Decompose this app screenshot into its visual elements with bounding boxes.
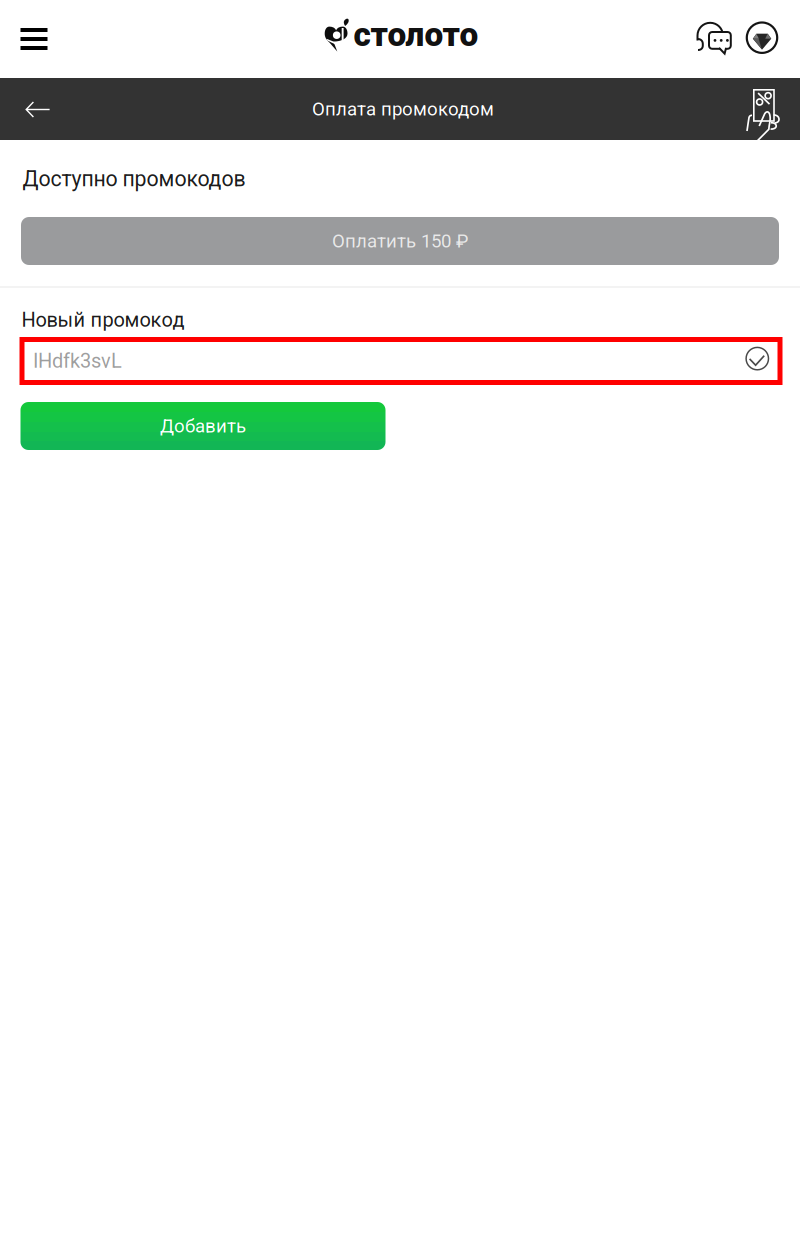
staticText: Новый промокод [21, 308, 184, 332]
button[interactable]: Поддержка [696, 21, 744, 77]
staticText: Оплатить 150 ₽ [332, 230, 468, 252]
button[interactable]: Промокоды [736, 78, 798, 140]
button[interactable]: Бонусы [740, 12, 784, 64]
button[interactable]: Оплатить 150 ₽ [21, 217, 779, 265]
staticText: Добавить [160, 415, 246, 437]
staticText: столото [353, 15, 478, 54]
staticText: IHdfk3svL [33, 349, 122, 373]
button[interactable]: Добавить [20, 402, 385, 450]
button[interactable]: Меню [3, 0, 65, 78]
staticText: Доступно промокодов [22, 166, 245, 191]
button[interactable]: Назад [7, 78, 69, 140]
staticText: Оплата промокодом [312, 98, 494, 120]
